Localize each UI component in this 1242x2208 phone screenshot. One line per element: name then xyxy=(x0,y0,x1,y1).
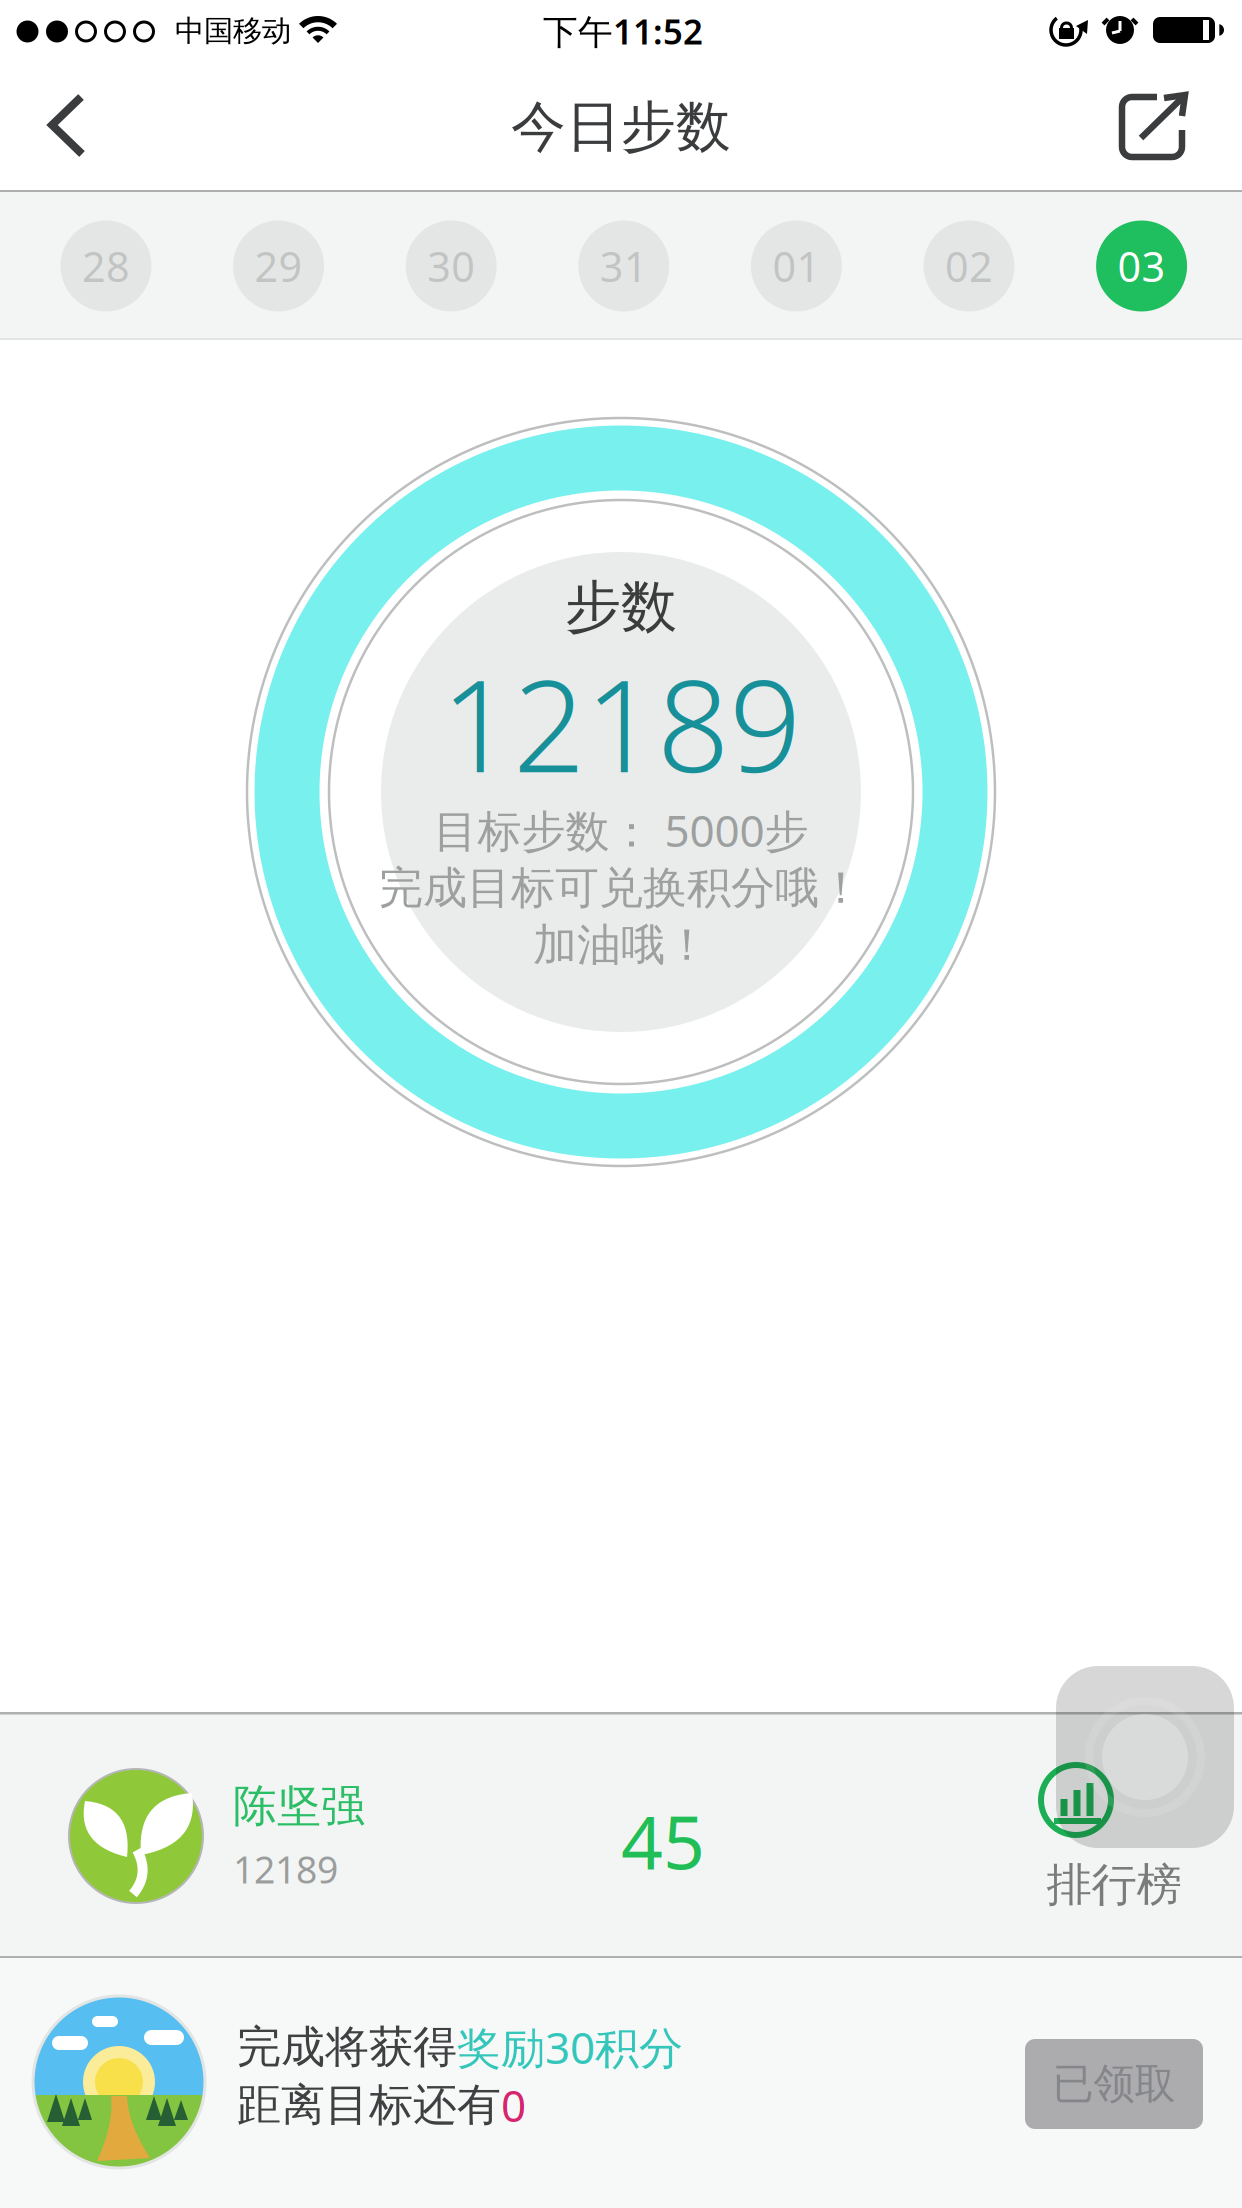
staticText: 0 xyxy=(501,2076,526,2134)
staticText: 29 xyxy=(255,239,303,293)
button[interactable]: 01 xyxy=(751,220,842,311)
staticText: 12189 xyxy=(233,1844,338,1894)
button[interactable]: 28 xyxy=(60,220,151,311)
staticText: 距离目标还有 xyxy=(237,2078,501,2132)
staticText: 加油哦！ xyxy=(533,918,709,972)
staticText: 30 xyxy=(427,239,475,293)
staticText: 下午11:52 xyxy=(543,8,703,54)
staticText: 步数 xyxy=(565,573,677,641)
button[interactable] xyxy=(1056,1666,1234,1848)
staticText: 12189 xyxy=(441,639,801,807)
staticText: 完成目标可兑换积分哦！ xyxy=(379,861,863,915)
staticText: 45 xyxy=(621,1792,705,1890)
staticText: 今日步数 xyxy=(511,93,731,160)
staticText: 02 xyxy=(945,239,993,293)
button[interactable] xyxy=(1097,71,1207,181)
staticText: 奖励30积分 xyxy=(457,2018,683,2076)
button[interactable]: 31 xyxy=(578,220,669,311)
staticText: 28 xyxy=(82,239,130,293)
staticText: 31 xyxy=(600,239,648,293)
button[interactable]: 29 xyxy=(233,220,324,311)
button[interactable] xyxy=(50,70,140,182)
staticText: 03 xyxy=(1118,239,1166,293)
button[interactable]: 02 xyxy=(923,220,1014,311)
staticText: 已领取 xyxy=(1052,2059,1175,2109)
staticText: 中国移动 xyxy=(175,13,291,49)
button[interactable]: 30 xyxy=(406,220,497,311)
button[interactable]: 03 xyxy=(1096,220,1187,311)
staticText: 完成将获得 xyxy=(237,2020,457,2074)
staticText: 排行榜 xyxy=(1046,1857,1181,1913)
button[interactable]: 排行榜 xyxy=(1014,1661,1214,1931)
staticText: 目标步数： 5000步 xyxy=(433,801,808,859)
button[interactable]: 已领取 xyxy=(1025,2039,1203,2129)
staticText: 陈坚强 xyxy=(233,1779,365,1833)
staticText: 01 xyxy=(772,239,820,293)
